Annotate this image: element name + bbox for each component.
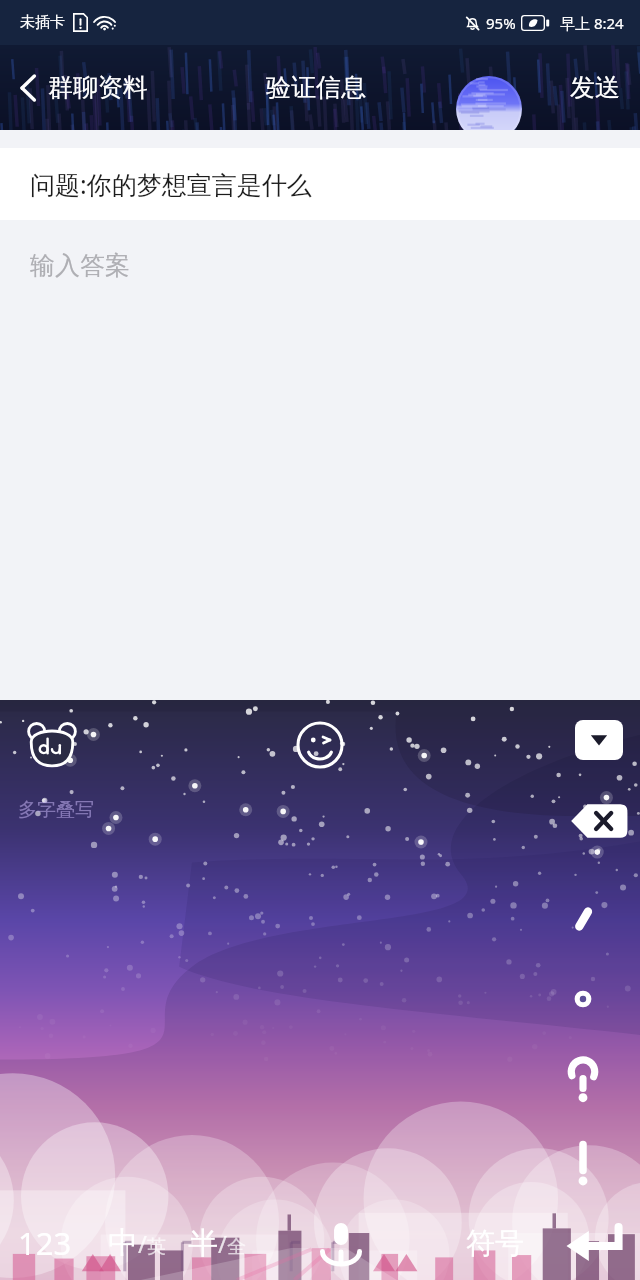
staticText: 符号 [466,1225,524,1262]
staticText: / [218,1227,227,1260]
staticText: 输入答案 [30,250,130,281]
staticText: 未插卡 [20,13,65,32]
staticText: 多字叠写 [18,798,94,822]
staticText: 全 [227,1235,246,1259]
button[interactable]: Period [552,968,614,1030]
button[interactable]: 中 [98,1214,176,1272]
staticText: / [138,1227,147,1260]
button[interactable]: Baidu input settings [26,718,78,770]
staticText: 发送 [570,72,620,103]
button[interactable]: Comma [552,888,614,950]
button[interactable]: Voice input [312,1218,370,1268]
button[interactable]: 半 [178,1214,256,1272]
staticText: 群聊资料 [48,72,148,103]
staticText: 半 [188,1224,218,1262]
button[interactable]: 输入答案 [0,220,640,680]
button[interactable]: Hide keyboard [575,720,623,760]
button[interactable]: Emoji [295,720,345,770]
button[interactable]: Enter [564,1218,626,1268]
staticText: 123 [18,1222,72,1264]
button[interactable]: Delete [570,800,628,842]
button[interactable]: 发送 [550,62,640,113]
staticText: 早上 8:24 [560,13,624,33]
other: Back [18,73,38,103]
staticText: 问题:你的梦想宣言是什么 [30,167,312,201]
staticText: 英 [147,1235,166,1259]
staticText: 95% [486,13,516,33]
button[interactable]: 123 [6,1212,84,1274]
staticText: 中 [108,1224,138,1262]
staticText: 验证信息 [266,72,366,103]
button[interactable]: Exclamation mark [552,1132,614,1194]
button[interactable]: Question mark [552,1050,614,1112]
button[interactable]: Back [0,66,160,109]
button[interactable]: 符号 [456,1215,534,1272]
button[interactable]: 问题:你的梦想宣言是什么 [0,148,640,220]
